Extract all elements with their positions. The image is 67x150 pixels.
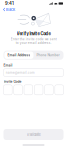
button[interactable]	[14, 85, 22, 95]
button[interactable]: Back	[0, 7, 18, 12]
staticText: Enter the invite code we sent to your em…	[10, 37, 56, 45]
button[interactable]: Validate	[3, 129, 63, 140]
button[interactable]	[24, 85, 33, 95]
staticText: Validate	[26, 132, 40, 137]
staticText: Email Address	[7, 53, 30, 57]
staticText: Verify Invite Code	[16, 31, 50, 36]
staticText: 9:41	[5, 1, 14, 6]
staticText: Email	[3, 63, 12, 67]
staticText: Back	[6, 7, 15, 12]
button[interactable]: name@email.com	[3, 69, 63, 77]
staticText: Invite Code	[3, 80, 21, 83]
button[interactable]	[45, 85, 53, 95]
staticText: name@email.com	[6, 71, 35, 74]
button[interactable]: Phone Number	[33, 51, 63, 59]
staticText: Phone Number	[36, 53, 59, 57]
button[interactable]	[3, 85, 12, 95]
button[interactable]	[55, 85, 63, 95]
button[interactable]	[34, 85, 43, 95]
button[interactable]: Email Address	[4, 51, 33, 59]
